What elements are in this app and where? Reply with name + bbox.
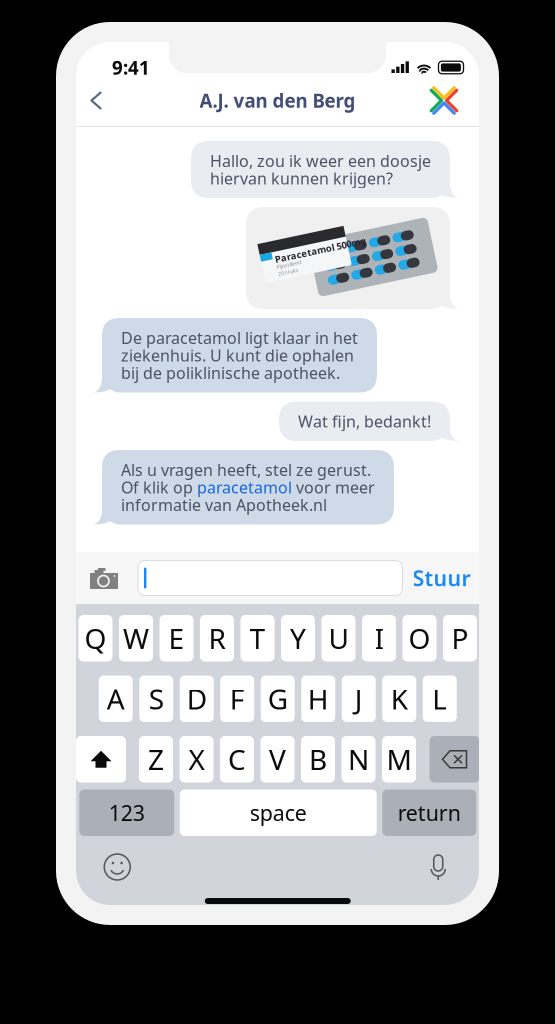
button[interactable]: Dictate <box>418 847 458 887</box>
staticText: X <box>188 741 204 778</box>
staticText: E <box>168 620 184 657</box>
staticText: 9:41 <box>112 55 150 80</box>
staticText: K <box>391 680 408 717</box>
button[interactable]: Back <box>76 80 116 120</box>
button[interactable]: C <box>220 736 254 782</box>
staticText: bij de poliklinische apotheek. <box>121 362 340 383</box>
button[interactable]: Y <box>281 615 315 661</box>
button[interactable]: M <box>382 736 416 782</box>
staticText: G <box>268 680 288 717</box>
staticText: 20 stuks <box>274 264 295 271</box>
button[interactable]: R <box>200 615 234 661</box>
button[interactable]: S <box>139 675 173 722</box>
staticText: O <box>408 620 430 657</box>
button[interactable]: P <box>443 615 477 661</box>
staticText: M <box>386 741 411 778</box>
staticText: H <box>308 680 329 717</box>
button[interactable]: space <box>180 789 377 836</box>
staticText: Stuur <box>412 564 470 592</box>
staticText: V <box>269 741 286 778</box>
staticText: De paracetamol ligt klaar in het <box>121 327 358 348</box>
staticText: C <box>228 741 246 778</box>
staticText: D <box>187 680 207 717</box>
button[interactable]: W <box>119 615 153 661</box>
staticText: P <box>451 620 468 657</box>
staticText: paracetamol <box>197 477 292 498</box>
staticText: W <box>123 620 149 657</box>
button[interactable]: Emoji <box>97 847 137 887</box>
staticText: A <box>107 680 125 717</box>
button[interactable]: Q <box>78 615 112 661</box>
button[interactable]: Delete <box>429 736 479 782</box>
button[interactable]: Stuur <box>402 558 479 598</box>
staticText: Hallo, zou ik weer een doosje <box>210 150 431 171</box>
staticText: L <box>432 680 447 717</box>
staticText: Wat fijn, bedankt! <box>298 411 431 432</box>
staticText: Of klik op <box>121 477 197 498</box>
staticText: F <box>230 680 245 717</box>
staticText: ziekenhuis. U kunt die ophalen <box>121 345 354 366</box>
button[interactable]: U <box>321 615 355 661</box>
staticText: Pijnstillend <box>274 257 299 264</box>
button[interactable]: Camera <box>83 560 125 596</box>
staticText: Paracetamol 500mg <box>274 246 367 259</box>
button[interactable]: E <box>159 615 193 661</box>
button[interactable]: return <box>382 789 476 836</box>
staticText: J <box>355 680 363 717</box>
staticText: 123 <box>109 799 145 827</box>
button[interactable]: G <box>261 675 295 722</box>
staticText: R <box>208 620 225 657</box>
staticText: N <box>348 741 369 778</box>
button[interactable]: X <box>179 736 213 782</box>
button[interactable]: F <box>220 675 254 722</box>
button[interactable]: O <box>402 615 436 661</box>
staticText: return <box>398 799 461 827</box>
staticText: S <box>149 680 164 717</box>
staticText: A.J. van den Berg <box>199 88 355 113</box>
button[interactable]: Shift <box>76 736 126 782</box>
button[interactable]: K <box>382 675 416 722</box>
staticText: informatie van Apotheek.nl <box>121 494 327 515</box>
staticText: hiervan kunnen krijgen? <box>210 168 393 189</box>
staticText: B <box>309 741 327 778</box>
button[interactable]: Company logo <box>424 80 464 120</box>
button[interactable]: V <box>260 736 294 782</box>
button[interactable]: J <box>342 675 376 722</box>
staticText: T <box>249 620 265 657</box>
button[interactable]: D <box>180 675 214 722</box>
button[interactable]: L <box>423 675 457 722</box>
staticText: Y <box>290 620 306 657</box>
button[interactable]: T <box>240 615 274 661</box>
button[interactable]: I <box>362 615 396 661</box>
button[interactable]: 123 <box>79 789 174 836</box>
staticText: Z <box>148 741 164 778</box>
button[interactable]: Z <box>139 736 173 782</box>
staticText: voor meer <box>292 477 375 498</box>
button[interactable]: B <box>301 736 335 782</box>
staticText: Als u vragen heeft, stel ze gerust. <box>121 459 371 480</box>
button[interactable]: N <box>341 736 375 782</box>
button[interactable]: A <box>99 675 133 722</box>
button[interactable]: H <box>301 675 335 722</box>
staticText: I <box>374 620 383 657</box>
staticText: U <box>328 620 348 657</box>
staticText: space <box>250 799 307 827</box>
staticText: Q <box>84 620 106 657</box>
